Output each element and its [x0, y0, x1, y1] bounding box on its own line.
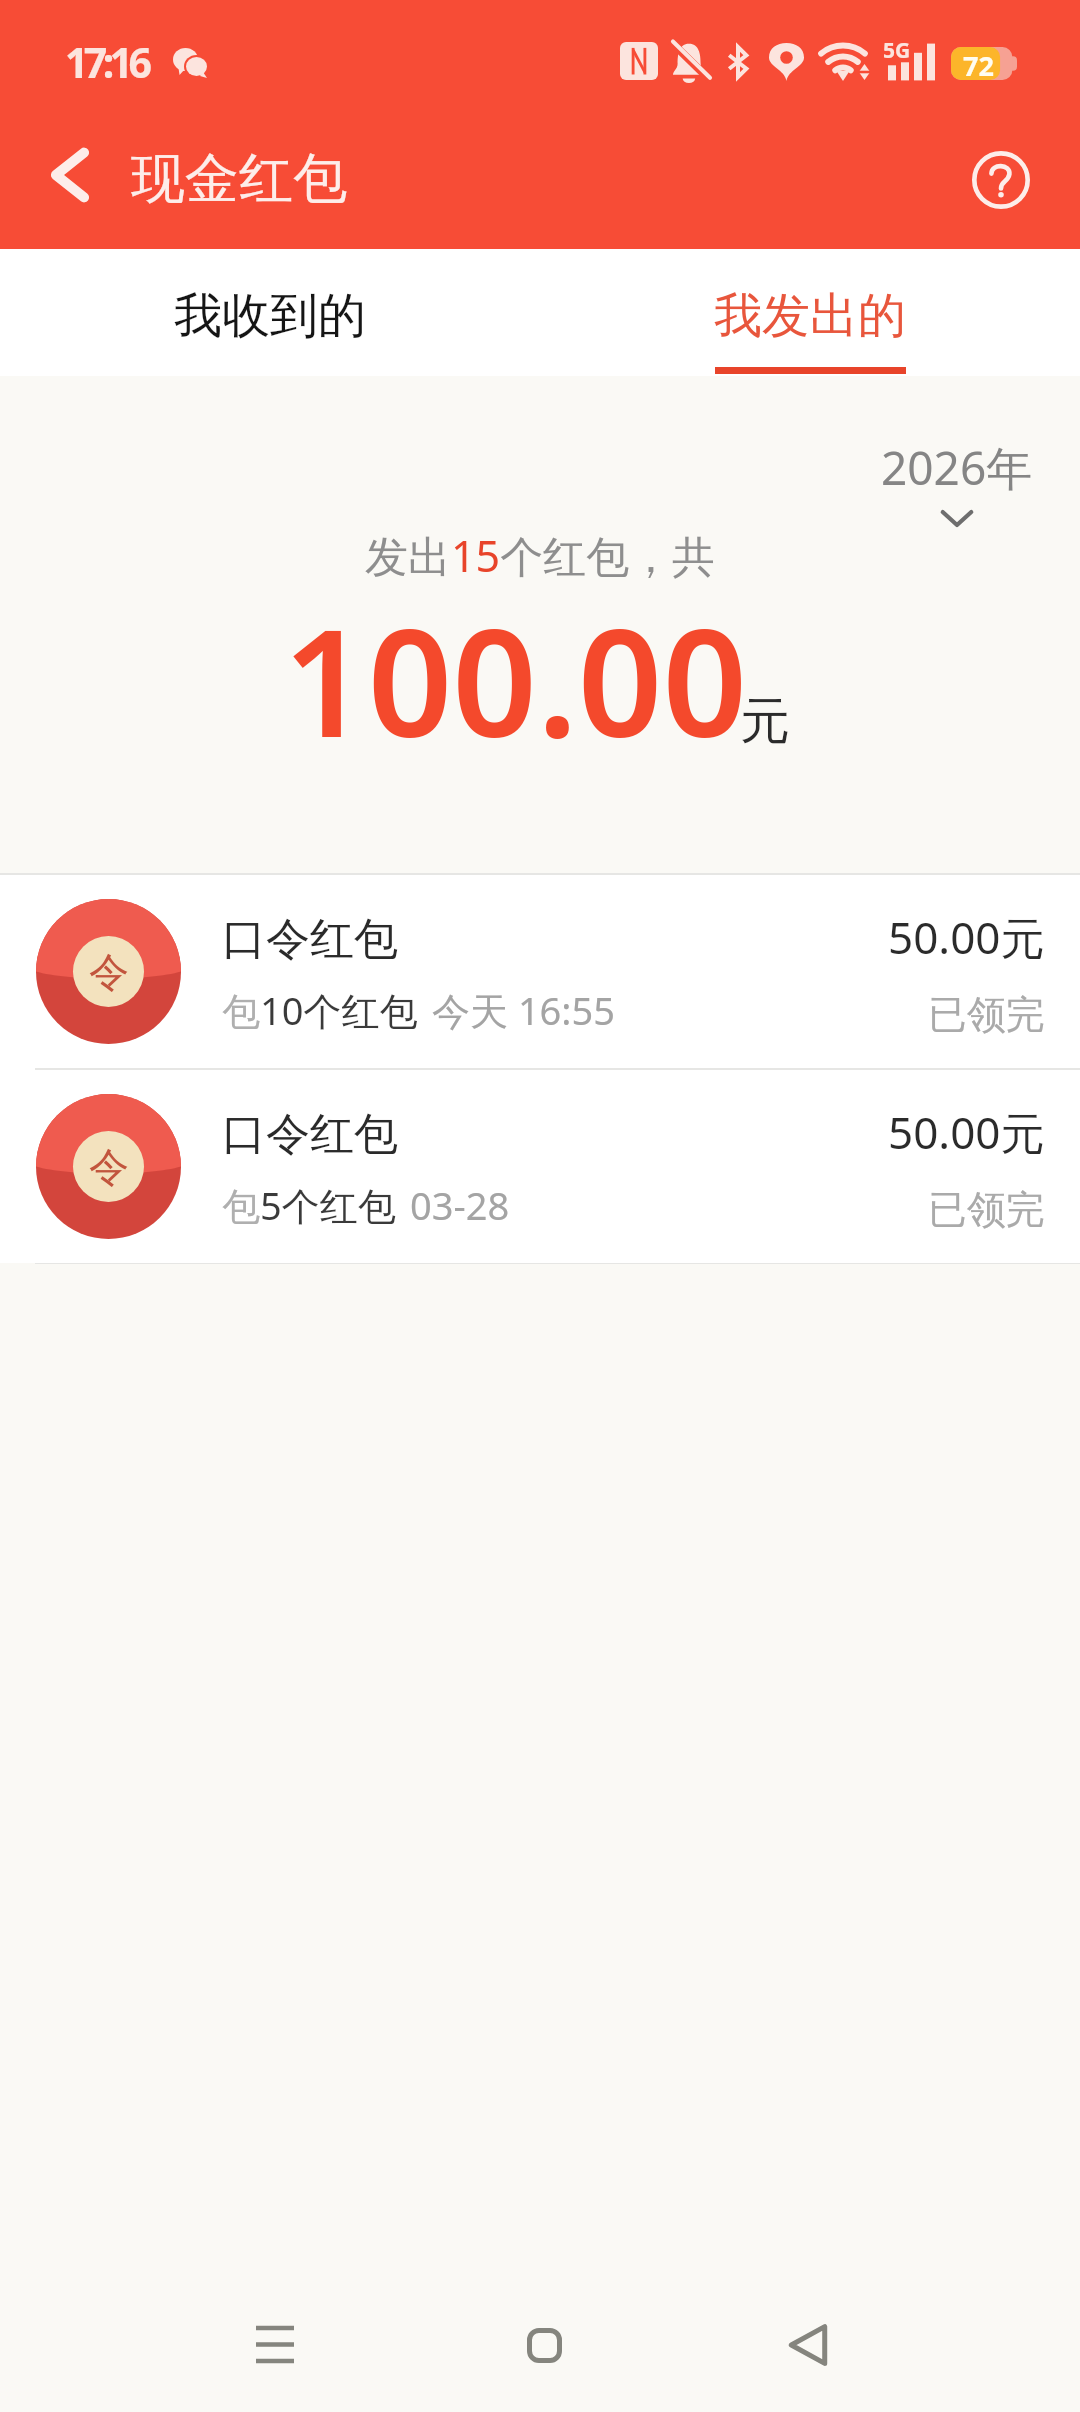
staticText: 50.00元: [888, 907, 1045, 967]
button[interactable]: Help: [936, 115, 1066, 245]
button[interactable]: 令: [0, 875, 1080, 1068]
staticText: 令: [89, 1142, 129, 1192]
staticText: 我发出的: [714, 286, 906, 346]
button[interactable]: 2026年: [881, 436, 1033, 528]
staticText: 今天 16:55: [432, 984, 616, 1036]
staticText: 元: [740, 690, 790, 753]
staticText: 发出15个红包，共: [365, 526, 716, 585]
staticText: 包5个红包: [222, 1179, 396, 1231]
button[interactable]: Back: [10, 112, 130, 238]
staticText: 已领完: [928, 990, 1045, 1039]
staticText: 已领完: [928, 1185, 1045, 1234]
staticText: 包10个红包: [222, 984, 418, 1036]
button[interactable]: 我发出的: [540, 249, 1080, 376]
staticText: 现金红包: [131, 145, 347, 213]
button[interactable]: 令: [0, 1070, 1080, 1263]
staticText: 50.00元: [888, 1102, 1045, 1162]
staticText: 100.00: [283, 579, 748, 781]
staticText: 令: [89, 947, 129, 997]
staticText: 17:16: [65, 34, 148, 90]
staticText: 2026年: [881, 436, 1033, 499]
button[interactable]: Recent apps: [205, 2275, 345, 2412]
staticText: 口令红包: [222, 912, 398, 967]
staticText: 72: [963, 47, 994, 80]
staticText: 03-28: [410, 1179, 510, 1231]
button[interactable]: Back: [738, 2275, 878, 2412]
staticText: 我收到的: [174, 286, 366, 346]
staticText: 5G: [883, 36, 911, 65]
button[interactable]: Home: [474, 2275, 614, 2412]
staticText: 口令红包: [222, 1107, 398, 1162]
button[interactable]: 我收到的: [0, 249, 540, 376]
